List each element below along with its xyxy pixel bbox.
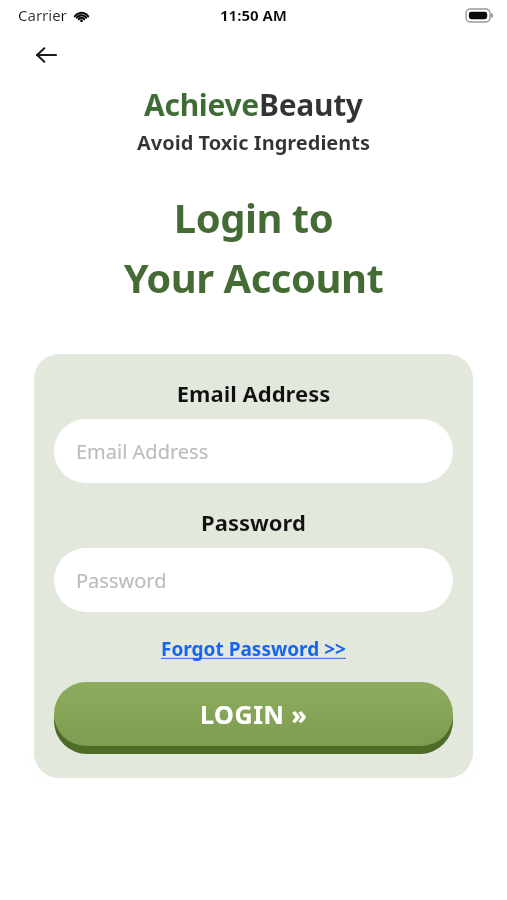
staticText: Forgot Password >> [161, 636, 346, 662]
staticText: 11:50 AM [220, 5, 287, 25]
button[interactable]: Email Address [54, 419, 453, 483]
staticText: Avoid Toxic Ingredients [0, 129, 507, 156]
staticText: Beauty [259, 84, 363, 125]
button[interactable]: LOGIN » [54, 682, 453, 754]
button[interactable]: Forgot Password >> [155, 634, 352, 664]
button[interactable]: Back [26, 35, 66, 75]
staticText: Email Address [54, 378, 453, 408]
button[interactable]: Password [54, 548, 453, 612]
staticText: Password [76, 567, 167, 594]
staticText: Login to [0, 190, 507, 244]
staticText: Your Account [0, 250, 507, 304]
staticText: Email Address [76, 438, 209, 465]
staticText: Carrier [18, 5, 67, 25]
staticText: Achieve [144, 84, 259, 125]
staticText: LOGIN » [200, 697, 308, 731]
staticText: Password [54, 507, 453, 537]
